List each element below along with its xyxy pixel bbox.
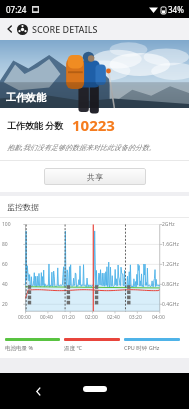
staticText: 34% (168, 4, 184, 15)
staticText: 04:00 (152, 314, 165, 321)
button[interactable]: Back (3, 22, 17, 36)
staticText: 0.4GHz (162, 301, 179, 308)
staticText: 80 (2, 241, 8, 248)
staticText: 工作效能 分数 (7, 119, 64, 131)
staticText: 02:40 (107, 314, 120, 321)
staticText: 03:20 (129, 314, 142, 321)
staticText: 工作效能 (6, 91, 46, 104)
staticText: 2GHz (162, 221, 175, 228)
staticText: 10223 (72, 115, 115, 135)
staticText: 60 (2, 261, 8, 268)
staticText: 抱歉,我们没有足够的数据来对比此设备的分数。 (7, 143, 156, 153)
staticText: 40 (2, 281, 8, 288)
staticText: 00:40 (40, 314, 53, 321)
staticText: 1.6GHz (162, 241, 179, 248)
staticText: 00:00 (18, 314, 31, 321)
staticText: 0.8GHz (162, 281, 179, 288)
staticText: 100 (2, 221, 11, 228)
staticText: 共享 (87, 172, 103, 182)
staticText: 电池电量 % (5, 344, 34, 352)
staticText: 07:24 (6, 4, 27, 15)
staticText: 监控数据 (7, 202, 39, 212)
staticText: CPU 时钟 GHz (124, 344, 160, 352)
staticText: 01:20 (62, 314, 75, 321)
staticText: 温度 ℃ (64, 344, 82, 352)
button[interactable]: Home (83, 386, 107, 392)
button[interactable]: 共享 (44, 168, 146, 185)
staticText: 02:00 (85, 314, 98, 321)
staticText: SCORE DETAILS (32, 23, 98, 35)
staticText: 20 (2, 301, 8, 308)
staticText: 1.2GHz (162, 261, 179, 268)
button[interactable]: Back (30, 383, 46, 399)
